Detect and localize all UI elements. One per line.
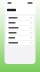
button[interactable] — [6, 35, 33, 40]
button[interactable] — [6, 20, 33, 25]
button[interactable] — [6, 40, 33, 45]
button[interactable] — [6, 30, 33, 35]
button[interactable] — [6, 25, 33, 30]
button[interactable] — [6, 15, 33, 20]
